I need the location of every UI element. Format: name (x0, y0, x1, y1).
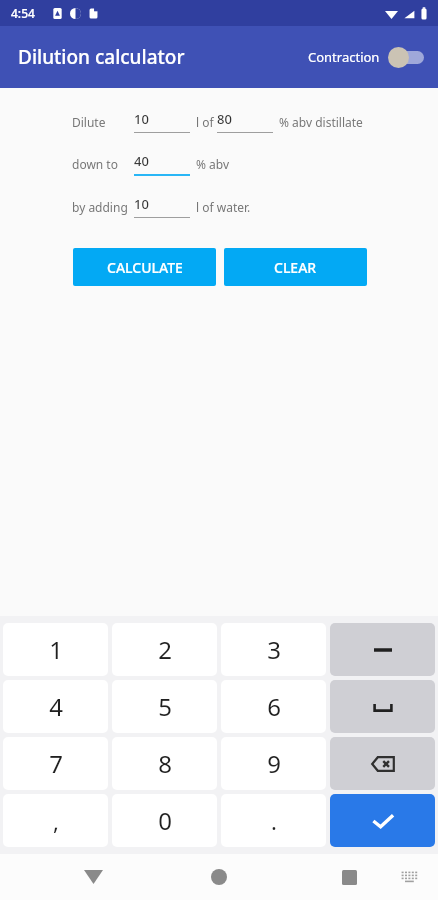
staticText: % abv (196, 156, 230, 172)
staticText: by adding (72, 199, 128, 215)
button[interactable]: 6 (221, 680, 326, 733)
staticText: Dilution calculator (18, 44, 185, 70)
staticText: 4:54 (11, 5, 35, 21)
button[interactable]: 4 (3, 680, 108, 733)
button[interactable]: 9 (221, 737, 326, 790)
staticText: 8 (158, 747, 172, 780)
staticText: CALCULATE (107, 258, 183, 277)
staticText: 0 (158, 804, 172, 837)
button[interactable]: Backspace (330, 737, 435, 790)
button[interactable]: 7 (3, 737, 108, 790)
staticText: 7 (49, 747, 63, 780)
staticText: . (271, 806, 277, 836)
staticText: , (53, 806, 59, 836)
staticText: 3 (267, 633, 281, 666)
staticText: 80 (217, 110, 232, 128)
staticText: 10 (134, 110, 149, 128)
button[interactable]: 10 (134, 195, 190, 218)
button[interactable]: Back (76, 860, 110, 894)
button[interactable]: CLEAR (224, 248, 367, 286)
button[interactable]: CALCULATE (73, 248, 216, 286)
button[interactable]: 8 (112, 737, 217, 790)
staticText: CLEAR (274, 258, 317, 277)
button[interactable]: 5 (112, 680, 217, 733)
staticText: l of (196, 114, 217, 130)
staticText: down to (72, 156, 118, 172)
button[interactable]: Space (330, 680, 435, 733)
staticText: 5 (158, 690, 172, 723)
button[interactable]: 0 (112, 794, 217, 847)
staticText: % abv distillate (279, 114, 363, 130)
button[interactable]: 40 (134, 152, 190, 176)
staticText: Dilute (72, 114, 106, 130)
staticText: 9 (267, 747, 281, 780)
button[interactable]: 10 (134, 110, 190, 133)
button[interactable]: 1 (3, 623, 108, 676)
button[interactable]: 2 (112, 623, 217, 676)
staticText: 2 (158, 633, 172, 666)
staticText: Contraction (308, 48, 380, 66)
button[interactable]: , (3, 794, 108, 847)
button[interactable]: Home (202, 860, 236, 894)
staticText: 40 (134, 152, 149, 170)
button[interactable]: Switch keyboard (394, 862, 424, 892)
button[interactable]: Minus (330, 623, 435, 676)
button[interactable]: Enter (330, 794, 435, 847)
button[interactable]: Contraction (308, 46, 426, 68)
staticText: l of water. (196, 199, 251, 215)
staticText: 10 (134, 195, 149, 213)
staticText: 4 (49, 690, 63, 723)
button[interactable]: . (221, 794, 326, 847)
button[interactable]: Recents (332, 860, 366, 894)
staticText: 6 (267, 690, 281, 723)
button[interactable]: 3 (221, 623, 326, 676)
staticText: 1 (49, 633, 63, 666)
button[interactable]: 80 (217, 110, 273, 133)
